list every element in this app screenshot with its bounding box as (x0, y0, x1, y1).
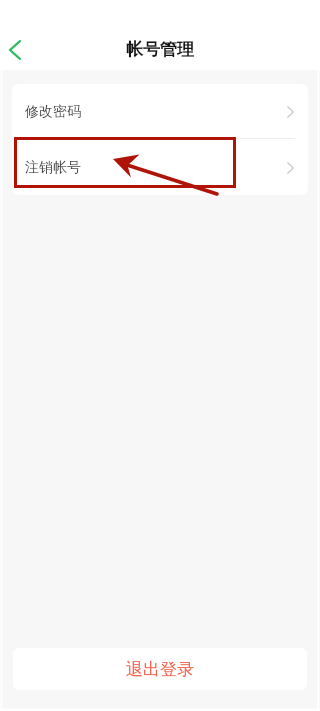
button[interactable]: 退出登录 (13, 648, 307, 690)
button[interactable]: Back (1, 28, 29, 72)
button[interactable]: 修改密码 (12, 84, 308, 138)
button[interactable]: 注销帐号 (12, 139, 308, 195)
staticText: 帐号管理 (126, 39, 194, 60)
staticText: 退出登录 (126, 659, 194, 680)
staticText: 修改密码 (25, 103, 81, 121)
staticText: 注销帐号 (25, 159, 81, 177)
